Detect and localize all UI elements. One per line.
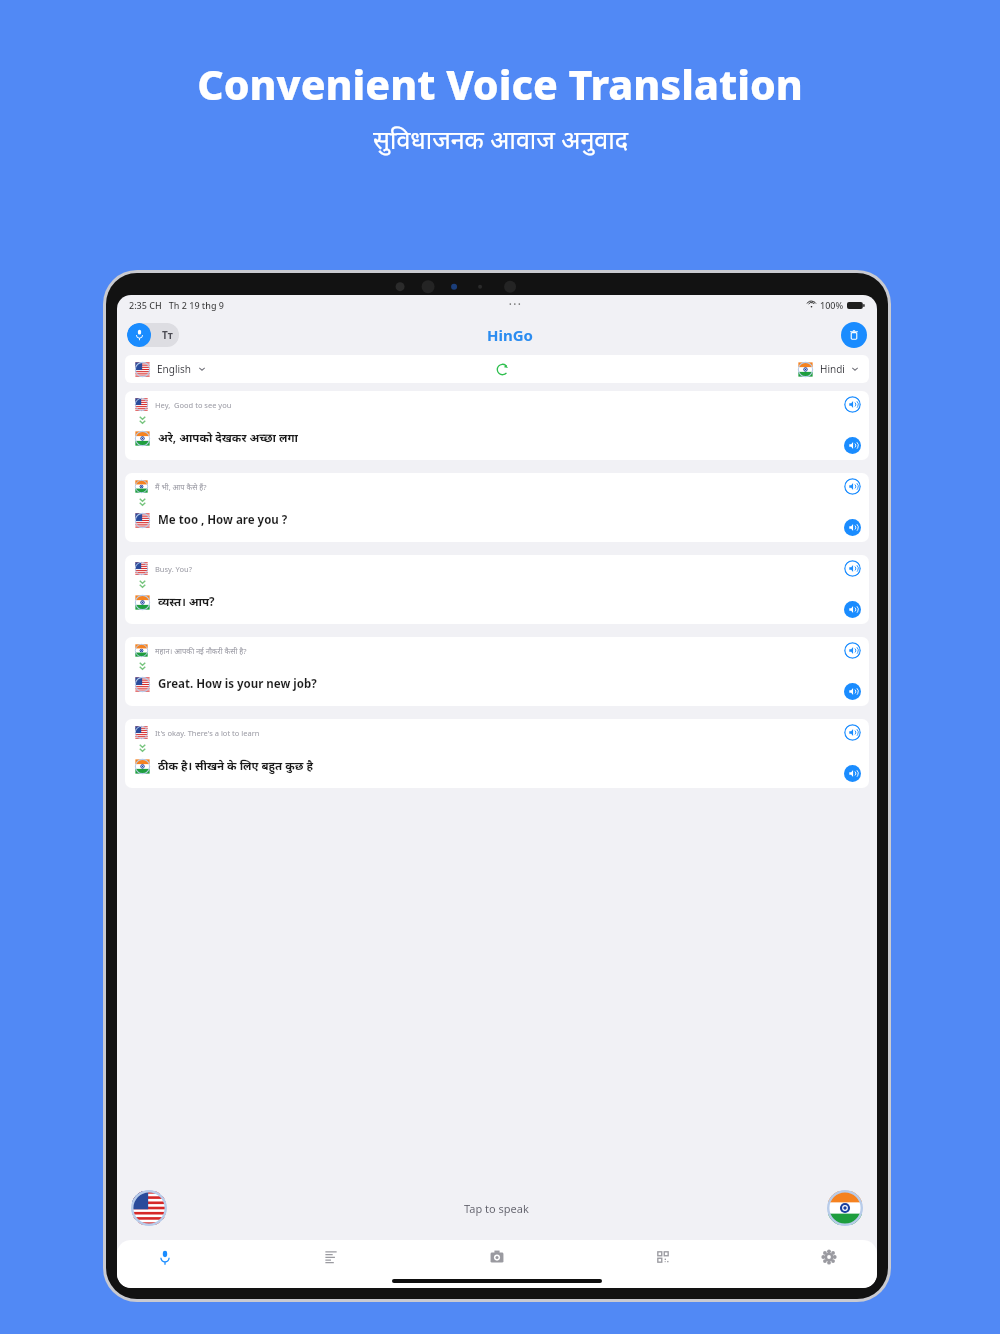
button[interactable]: Speak Hindi bbox=[827, 1190, 863, 1226]
staticText: ठीक है। सीखने के लिए बहुत कुछ है bbox=[158, 758, 313, 774]
staticText: Busy. You? bbox=[155, 564, 192, 574]
button[interactable]: English bbox=[135, 355, 206, 383]
button[interactable]: Play source audio bbox=[844, 396, 861, 413]
staticText: 100% bbox=[820, 299, 844, 311]
button[interactable]: Settings bbox=[799, 1240, 859, 1274]
button[interactable]: Swap languages bbox=[491, 358, 513, 380]
staticText: व्यस्त। आप? bbox=[158, 594, 215, 610]
button[interactable]: Play source audio bbox=[844, 724, 861, 741]
staticText: Hindi bbox=[820, 362, 845, 376]
button[interactable]: Hey, Good to see you bbox=[125, 391, 869, 460]
staticText: Convenient Voice Translation bbox=[197, 56, 803, 112]
button[interactable]: Speak English bbox=[131, 1190, 167, 1226]
staticText: अरे, आपको देखकर अच्छा लगा bbox=[158, 430, 298, 446]
button[interactable]: Busy. You? bbox=[125, 555, 869, 624]
button[interactable]: It's okay. There's a lot to learn bbox=[125, 719, 869, 788]
button[interactable]: Scan QR code bbox=[633, 1240, 693, 1274]
button[interactable]: Text translate bbox=[301, 1240, 361, 1274]
button[interactable]: Play source audio bbox=[844, 560, 861, 577]
button[interactable]: Play translated audio bbox=[844, 765, 861, 782]
staticText: Great. How is your new job? bbox=[158, 676, 317, 692]
button[interactable]: Play source audio bbox=[844, 642, 861, 659]
button[interactable]: Voice translate bbox=[135, 1240, 195, 1274]
button[interactable]: Play translated audio bbox=[844, 683, 861, 700]
staticText: English bbox=[157, 362, 192, 376]
button[interactable]: Camera translate bbox=[467, 1240, 527, 1274]
button[interactable]: Play translated audio bbox=[844, 519, 861, 536]
button[interactable]: Voice or text input mode bbox=[127, 323, 179, 347]
button[interactable]: Play translated audio bbox=[844, 437, 861, 454]
staticText: Me too , How are you ? bbox=[158, 512, 288, 528]
staticText: HinGo bbox=[487, 325, 533, 345]
button[interactable]: Hindi bbox=[798, 355, 859, 383]
staticText: It's okay. There's a lot to learn bbox=[155, 728, 260, 738]
staticText: Tap to speak bbox=[464, 1201, 529, 1216]
staticText: Tт bbox=[162, 328, 173, 342]
staticText: 2:35 CH Th 2 19 thg 9 bbox=[129, 299, 225, 311]
button[interactable]: Clear conversation bbox=[841, 322, 867, 348]
button[interactable]: मैं भी, आप कैसे हैं? bbox=[125, 473, 869, 542]
staticText: Hey, Good to see you bbox=[155, 400, 232, 410]
button[interactable]: Play translated audio bbox=[844, 601, 861, 618]
staticText: • • • bbox=[509, 300, 521, 310]
button[interactable]: Play source audio bbox=[844, 478, 861, 495]
button[interactable]: महान। आपकी नई नौकरी कैसी है? bbox=[125, 637, 869, 706]
staticText: मैं भी, आप कैसे हैं? bbox=[155, 482, 207, 492]
staticText: सुविधाजनक आवाज अनुवाद bbox=[373, 122, 628, 156]
staticText: महान। आपकी नई नौकरी कैसी है? bbox=[155, 646, 247, 656]
